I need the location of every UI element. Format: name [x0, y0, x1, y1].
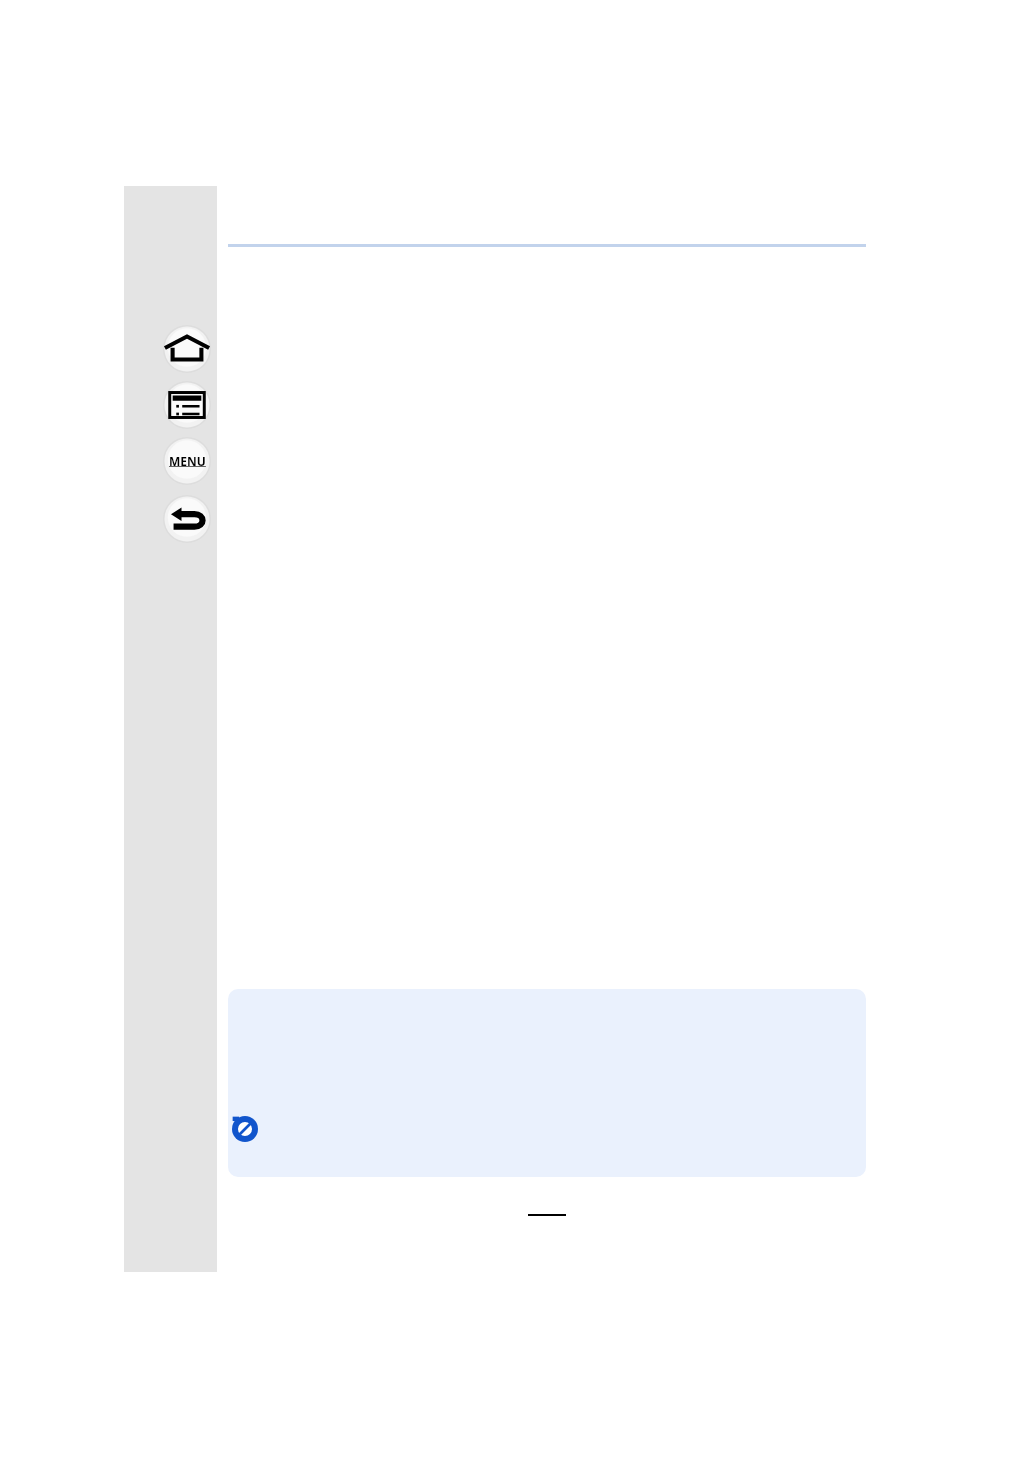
- button[interactable]: Home: [163, 325, 211, 373]
- button[interactable]: List: [163, 381, 211, 429]
- button[interactable]: MENU: [163, 437, 211, 485]
- button[interactable]: Not available: [232, 1116, 258, 1142]
- button[interactable]: Back: [163, 495, 211, 543]
- staticText: MENU: [169, 453, 206, 469]
- button[interactable]: [228, 989, 866, 1177]
